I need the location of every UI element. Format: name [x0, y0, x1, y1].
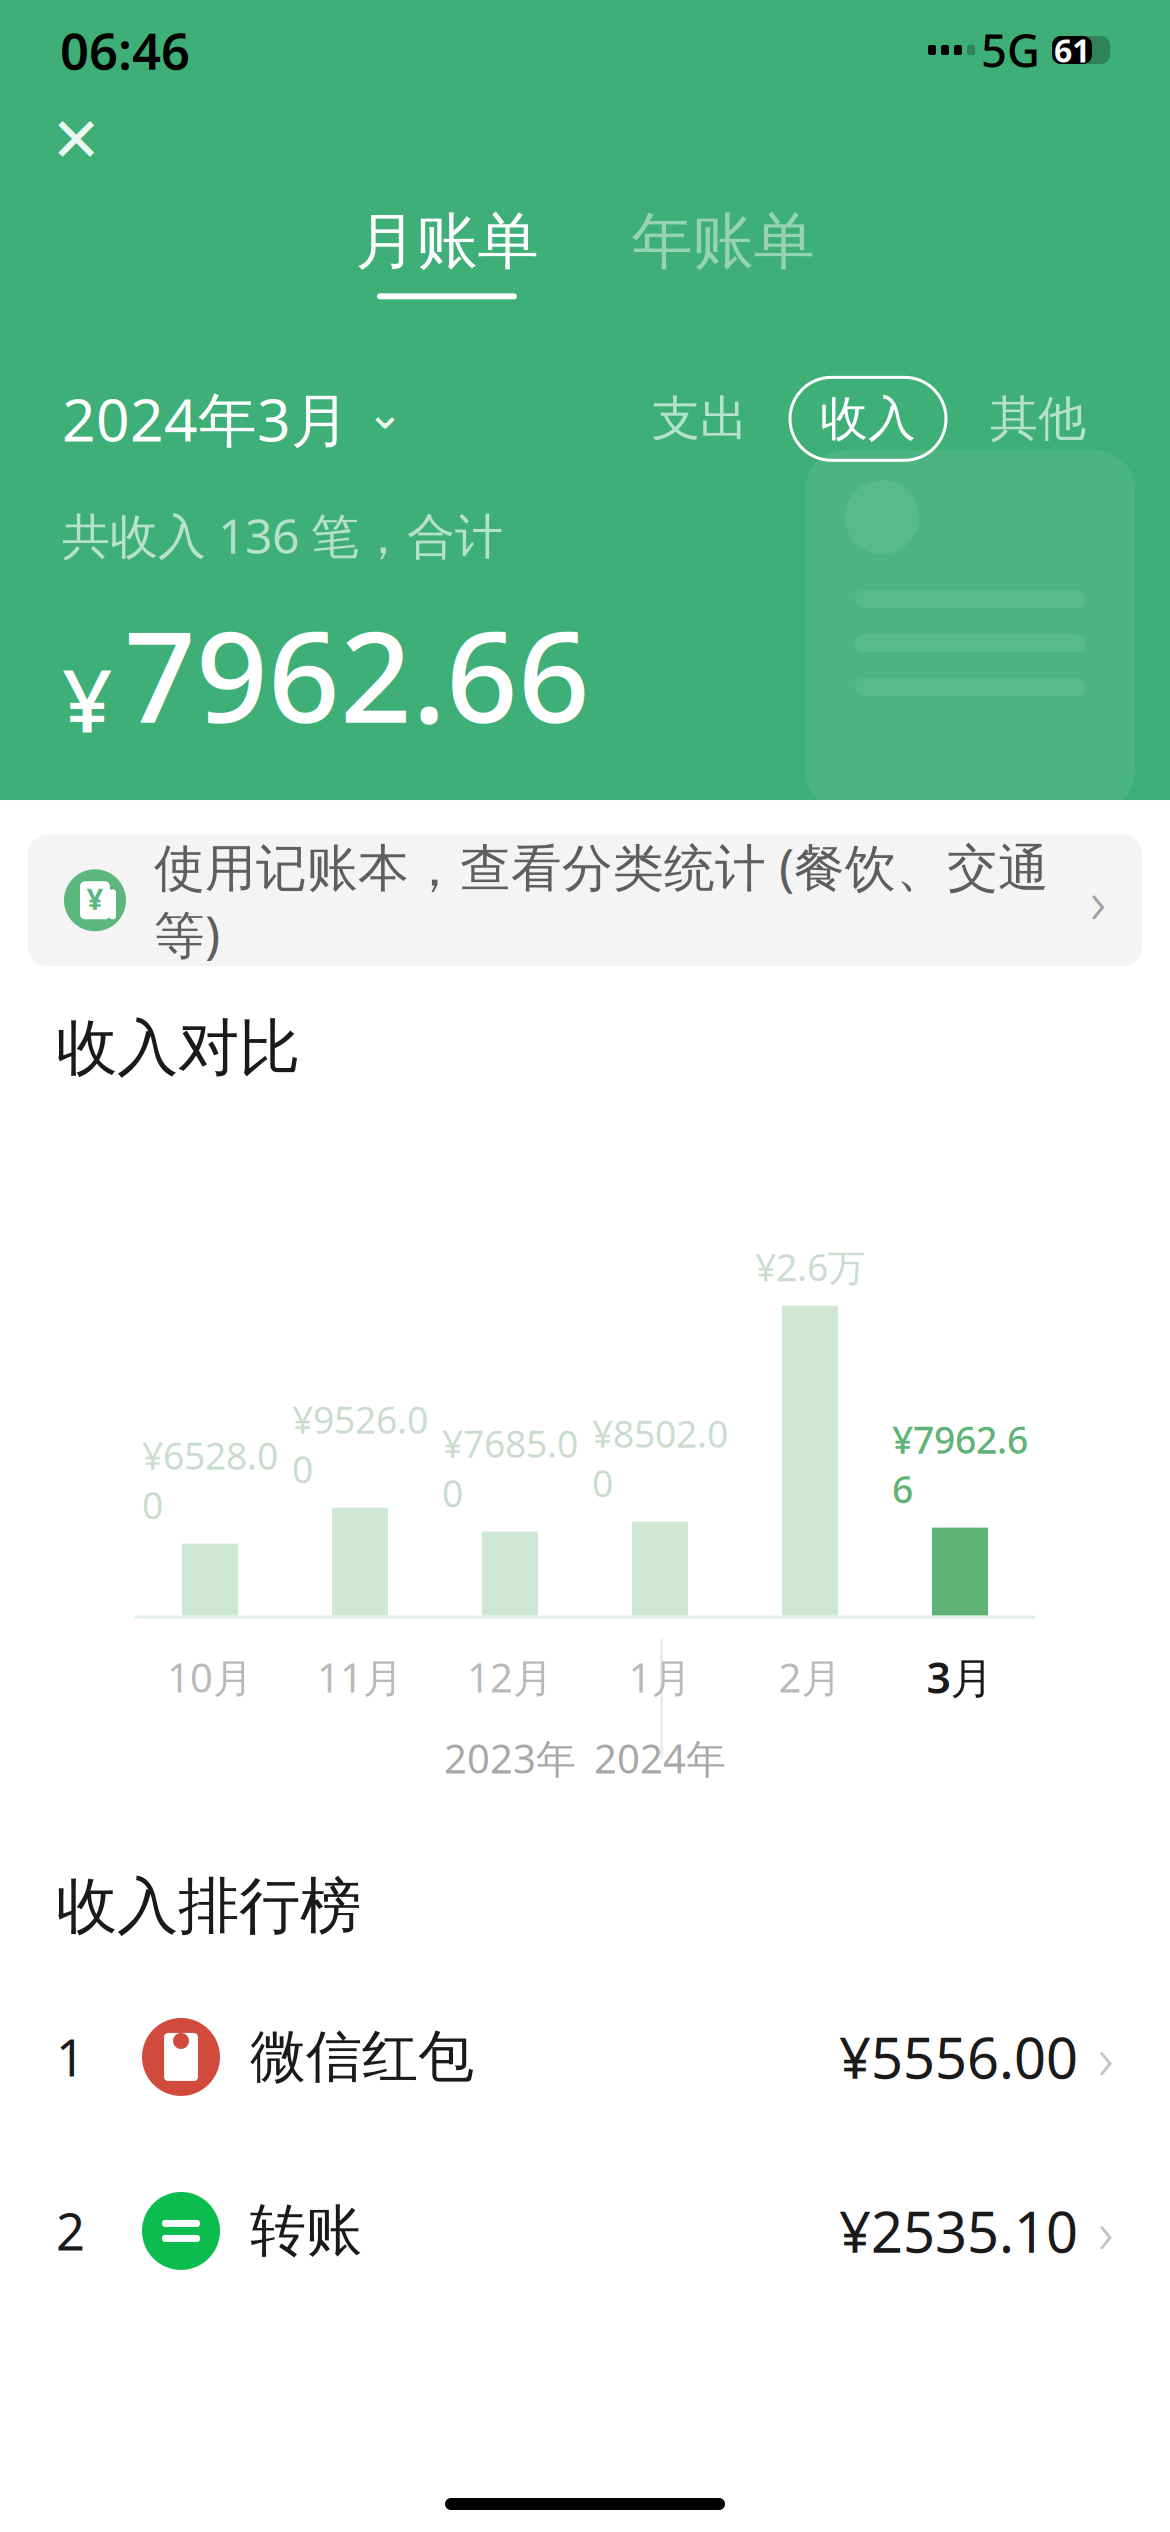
staticText: 5G [981, 20, 1040, 80]
staticText: 2024年3月 [62, 380, 350, 458]
staticText: 转账 [250, 2197, 362, 2265]
staticText: ⌄ [366, 387, 404, 439]
button[interactable]: 月账单 [337, 204, 557, 299]
staticText: 月账单 [355, 204, 538, 279]
staticText: › [1098, 2192, 1114, 2270]
staticText: 7962.66 [124, 591, 590, 757]
staticText: 2023年 [444, 1731, 576, 1784]
staticText: ¥9526.00 [292, 1394, 428, 1494]
button[interactable]: 2024年3月 [62, 380, 404, 458]
staticText: ¥5556.00 [839, 2020, 1078, 2094]
staticText: 其他 [990, 389, 1086, 448]
staticText: 1 [56, 2023, 85, 2091]
staticText: 支出 [652, 389, 748, 448]
staticText: 11月 [317, 1650, 403, 1704]
staticText: ¥7685.00 [442, 1418, 578, 1518]
staticText: ¥ [86, 879, 103, 918]
staticText: 收入对比 [56, 1010, 300, 1086]
button[interactable]: 1 [0, 1970, 1170, 2144]
staticText: › [1098, 2018, 1114, 2096]
button[interactable]: 2 [0, 2144, 1170, 2318]
staticText: 年账单 [631, 204, 814, 279]
staticText: 2 [56, 2197, 85, 2265]
staticText: 1月 [628, 1650, 691, 1704]
staticText: 2024年 [594, 1731, 726, 1784]
staticText: 微信红包 [250, 2023, 474, 2091]
button[interactable]: 关闭 [36, 100, 116, 180]
button[interactable]: 支出 [630, 377, 770, 460]
staticText: 3月 [926, 1649, 993, 1705]
staticText: ¥2535.10 [839, 2194, 1078, 2268]
staticText: 收入排行榜 [56, 1869, 361, 1944]
button[interactable]: ¥ [28, 834, 1142, 966]
staticText: 2月 [778, 1650, 841, 1704]
button[interactable]: 年账单 [613, 204, 833, 299]
button[interactable]: 其他 [968, 377, 1108, 460]
staticText: ¥2.6万 [755, 1242, 865, 1292]
staticText: 共收入 136 笔，合计 [62, 503, 503, 567]
staticText: 61 [1054, 29, 1090, 71]
button[interactable]: 收入 [790, 377, 946, 460]
staticText: ¥ [62, 640, 112, 757]
staticText: 10月 [167, 1650, 253, 1704]
staticText: ¥7962.66 [892, 1414, 1028, 1514]
staticText: 12月 [467, 1650, 553, 1704]
staticText: ¥8502.00 [592, 1408, 728, 1508]
staticText: 06:46 [60, 16, 190, 84]
staticText: 使用记账本，查看分类统计 (餐饮、交通等) [154, 833, 1049, 968]
staticText: ✕ [50, 105, 101, 175]
staticText: ¥6528.00 [142, 1430, 278, 1530]
staticText: 收入 [820, 389, 916, 448]
staticText: › [1090, 860, 1106, 941]
